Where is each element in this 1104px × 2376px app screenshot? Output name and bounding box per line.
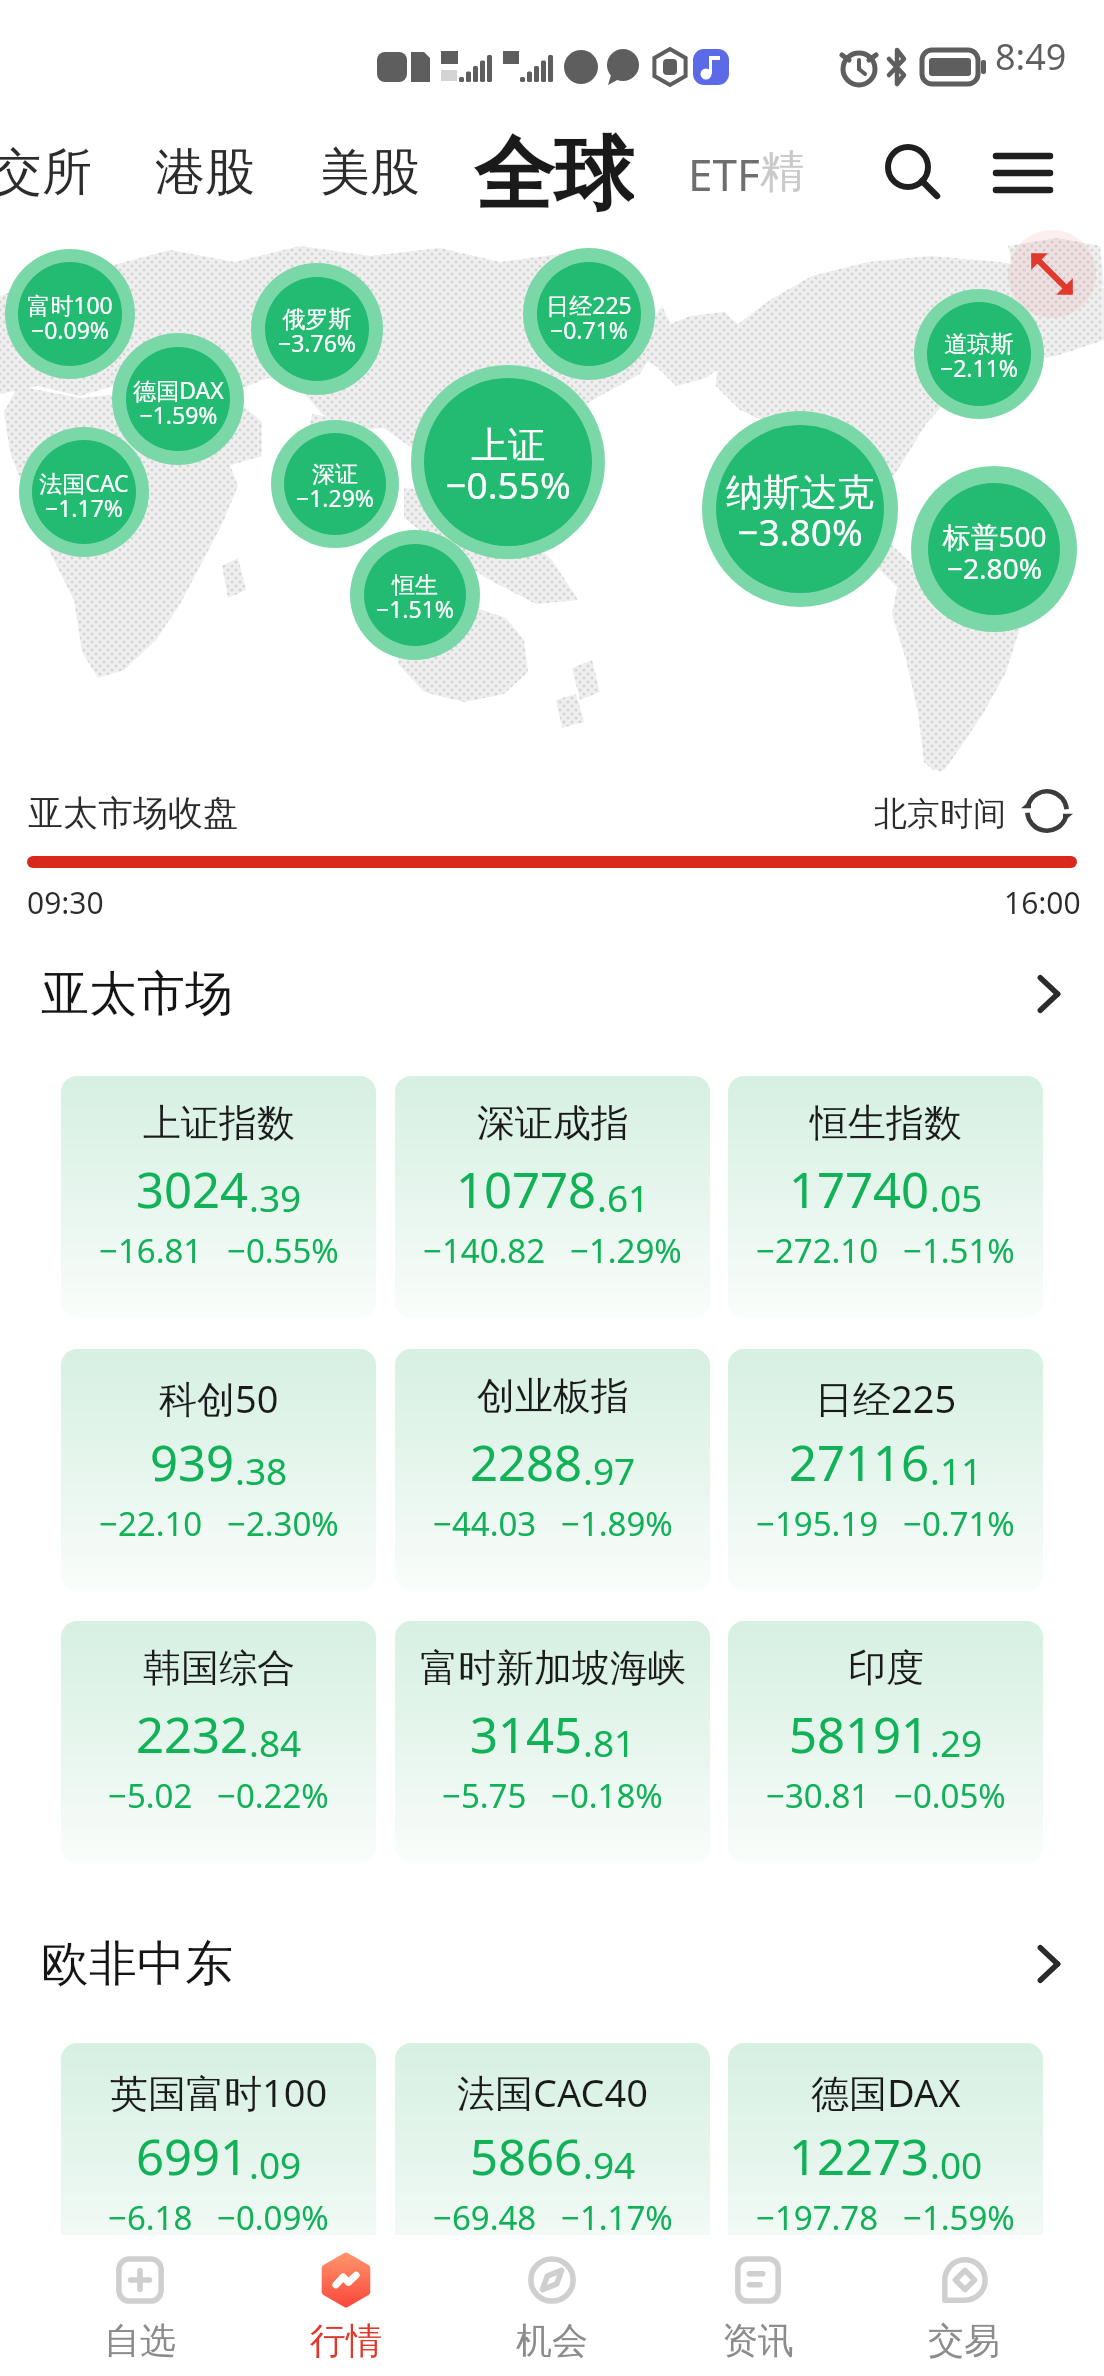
- staticText: 标普500 −2.80%: [942, 517, 1047, 587]
- staticText: 科创50: [159, 1372, 279, 1424]
- button[interactable]: 标普500 −2.80%: [911, 466, 1077, 632]
- button[interactable]: 上证指数: [61, 1076, 376, 1318]
- staticText: 58191: [789, 1701, 930, 1768]
- staticText: −0.18%: [551, 1773, 663, 1818]
- staticText: −16.81: [99, 1228, 203, 1273]
- button[interactable]: 纳斯达克 −3.80%: [702, 411, 898, 607]
- staticText: −0.71%: [903, 1501, 1015, 1546]
- staticText: 17740: [789, 1156, 930, 1223]
- button[interactable]: Search: [868, 128, 956, 216]
- staticText: 港股: [155, 141, 255, 204]
- button[interactable]: 德国DAX −1.59%: [112, 333, 244, 465]
- staticText: 富时新加坡海峡: [420, 1644, 686, 1692]
- button[interactable]: 法国CAC40: [395, 2043, 710, 2285]
- button[interactable]: 交所: [0, 136, 96, 208]
- staticText: 深证 −1.29%: [296, 460, 374, 514]
- staticText: 恒生 −1.51%: [376, 571, 454, 625]
- button[interactable]: 道琼斯 −2.11%: [914, 289, 1044, 419]
- staticText: .11: [930, 1445, 983, 1495]
- staticText: 16:00: [1004, 882, 1081, 923]
- staticText: 6991: [136, 2123, 249, 2190]
- staticText: 12273: [789, 2123, 930, 2190]
- staticText: .61: [597, 1172, 650, 1222]
- staticText: 5866: [470, 2123, 583, 2190]
- staticText: 939: [150, 1429, 235, 1496]
- staticText: −272.10: [756, 1228, 879, 1273]
- staticText: −0.55%: [227, 1228, 339, 1273]
- staticText: 上证指数: [143, 1099, 295, 1147]
- staticText: 上证 −0.55%: [445, 422, 571, 510]
- button[interactable]: 欧非中东: [0, 1914, 1104, 2014]
- staticText: 英国富时100: [110, 2066, 328, 2118]
- button[interactable]: 自选: [37, 2235, 243, 2376]
- button[interactable]: 日经225: [728, 1349, 1043, 1591]
- button[interactable]: 创业板指: [395, 1349, 710, 1591]
- staticText: −1.17%: [561, 2195, 673, 2240]
- button[interactable]: 英国富时100: [61, 2043, 376, 2285]
- staticText: .97: [583, 1445, 636, 1495]
- staticText: 韩国综合: [143, 1644, 295, 1692]
- button[interactable]: 恒生 −1.51%: [350, 530, 480, 660]
- other: Expand: [1026, 248, 1078, 300]
- button[interactable]: 全球: [474, 125, 638, 217]
- staticText: −0.22%: [217, 1773, 329, 1818]
- staticText: 深证成指: [477, 1099, 629, 1147]
- button[interactable]: 科创50: [61, 1349, 376, 1591]
- staticText: .94: [583, 2139, 636, 2189]
- staticText: 日经225 −0.71%: [546, 289, 632, 346]
- staticText: 2288: [470, 1429, 583, 1496]
- staticText: 10778: [456, 1156, 597, 1223]
- staticText: 纳斯达克 −3.80%: [726, 469, 874, 557]
- staticText: −30.81: [766, 1773, 870, 1818]
- staticText: 德国DAX −1.59%: [133, 374, 224, 431]
- button[interactable]: ETF: [688, 142, 818, 206]
- staticText: 亚太市场收盘: [28, 791, 238, 835]
- button[interactable]: 美股: [316, 136, 424, 208]
- button[interactable]: 亚太市场: [0, 944, 1104, 1044]
- button[interactable]: 行情: [243, 2235, 449, 2376]
- staticText: 俄罗斯 −3.76%: [278, 305, 356, 359]
- button[interactable]: 深证 −1.29%: [271, 420, 399, 548]
- staticText: −1.29%: [570, 1228, 682, 1273]
- staticText: 3145: [470, 1701, 583, 1768]
- button[interactable]: Refresh: [1020, 784, 1074, 838]
- button[interactable]: 法国CAC −1.17%: [19, 427, 149, 557]
- staticText: 资讯: [722, 2318, 794, 2363]
- staticText: 印度: [848, 1644, 924, 1692]
- button[interactable]: 机会: [449, 2235, 655, 2376]
- button[interactable]: 交易: [861, 2235, 1067, 2376]
- staticText: −195.19: [756, 1501, 879, 1546]
- staticText: 09:30: [27, 882, 104, 923]
- button[interactable]: Menu: [978, 128, 1068, 218]
- staticText: .39: [249, 1172, 302, 1222]
- button[interactable]: 德国DAX: [728, 2043, 1043, 2285]
- staticText: −69.48: [433, 2195, 537, 2240]
- staticText: −140.82: [423, 1228, 546, 1273]
- button[interactable]: 韩国综合: [61, 1621, 376, 1863]
- staticText: 自选: [104, 2318, 176, 2363]
- button[interactable]: 港股: [151, 136, 259, 208]
- staticText: −6.18: [108, 2195, 193, 2240]
- button[interactable]: 日经225 −0.71%: [523, 248, 655, 380]
- staticText: 精: [760, 144, 804, 199]
- staticText: −22.10: [99, 1501, 203, 1546]
- button[interactable]: 上证 −0.55%: [411, 365, 605, 559]
- button[interactable]: 资讯: [655, 2235, 861, 2376]
- staticText: −1.59%: [903, 2195, 1015, 2240]
- staticText: .38: [235, 1445, 288, 1495]
- staticText: 3024: [136, 1156, 249, 1223]
- button[interactable]: 富时100 −0.09%: [5, 249, 135, 379]
- staticText: −5.02: [108, 1773, 193, 1818]
- staticText: ETF: [688, 144, 760, 204]
- button[interactable]: 印度: [728, 1621, 1043, 1863]
- button[interactable]: 俄罗斯 −3.76%: [251, 263, 383, 395]
- button[interactable]: 深证成指: [395, 1076, 710, 1318]
- staticText: 法国CAC −1.17%: [39, 467, 129, 524]
- staticText: 北京时间: [874, 793, 1006, 835]
- staticText: −197.78: [756, 2195, 879, 2240]
- button[interactable]: 富时新加坡海峡: [395, 1621, 710, 1863]
- staticText: .81: [583, 1717, 636, 1767]
- button[interactable]: 恒生指数: [728, 1076, 1043, 1318]
- staticText: 道琼斯 −2.11%: [940, 330, 1018, 384]
- staticText: .00: [930, 2139, 983, 2189]
